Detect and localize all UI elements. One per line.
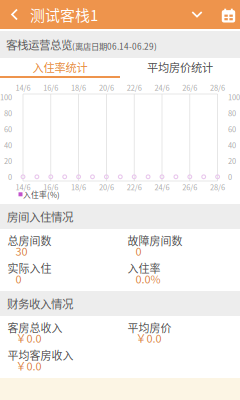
staticText: 平均房价统计 (147, 59, 213, 75)
staticText: 20 (228, 155, 236, 166)
staticText: 20/6 (99, 182, 114, 192)
staticText: ￥0.0 (15, 330, 41, 346)
staticText: 客栈运营总览(离店日期06.14-06.29) (6, 36, 157, 53)
staticText: 26/6 (182, 182, 197, 192)
staticText: 18/6 (71, 82, 86, 93)
button[interactable]: 平均房价统计 (120, 58, 240, 76)
staticText: 40 (228, 139, 236, 150)
staticText: 24/6 (154, 182, 169, 192)
staticText: 财务收入情况 (7, 295, 73, 312)
staticText: 0 (228, 171, 232, 182)
staticText: 18/6 (71, 182, 86, 192)
button[interactable]: Switch property (177, 0, 217, 29)
button[interactable]: 入住率统计 (0, 58, 120, 76)
staticText: 入住率统计 (32, 59, 87, 75)
button[interactable]: Back (0, 0, 30, 29)
staticText: 28/6 (210, 82, 225, 93)
staticText: 平均客房收入 (7, 347, 73, 363)
staticText: 30 (15, 243, 27, 259)
staticText: 100 (228, 92, 240, 102)
staticText: 14/6 (15, 182, 30, 192)
staticText: 60 (4, 124, 12, 134)
staticText: 80 (4, 108, 12, 118)
staticText: 入住率(%) (23, 189, 60, 200)
staticText: 0 (15, 271, 21, 287)
staticText: 100 (0, 92, 12, 102)
staticText: 16/6 (43, 82, 58, 93)
staticText: ￥0.0 (15, 358, 41, 374)
staticText: 40 (4, 139, 12, 150)
staticText: 测试客栈1 (30, 4, 98, 25)
staticText: 20/6 (99, 82, 114, 93)
staticText: 房间入住情况 (7, 208, 73, 225)
staticText: 0 (8, 171, 12, 182)
staticText: 客房总收入 (7, 320, 62, 335)
staticText: 入住率 (127, 260, 160, 276)
staticText: 22/6 (127, 182, 142, 192)
staticText: 22/6 (127, 82, 142, 93)
staticText: ￥0.0 (135, 330, 161, 346)
staticText: 24/6 (154, 82, 169, 93)
staticText: 60 (228, 124, 236, 134)
staticText: 14/6 (15, 82, 30, 93)
staticText: 20 (4, 155, 12, 166)
staticText: 实际入住 (7, 260, 51, 276)
staticText: 28/6 (210, 182, 225, 192)
staticText: 平均房价 (127, 320, 171, 335)
button[interactable]: Pick date range (217, 0, 240, 29)
staticText: 16/6 (43, 182, 58, 192)
staticText: 0 (135, 243, 141, 259)
staticText: 80 (228, 108, 236, 118)
staticText: 总房间数 (7, 233, 51, 248)
staticText: 故障房间数 (127, 233, 182, 248)
staticText: 0.0% (135, 271, 160, 287)
staticText: 26/6 (182, 82, 197, 93)
